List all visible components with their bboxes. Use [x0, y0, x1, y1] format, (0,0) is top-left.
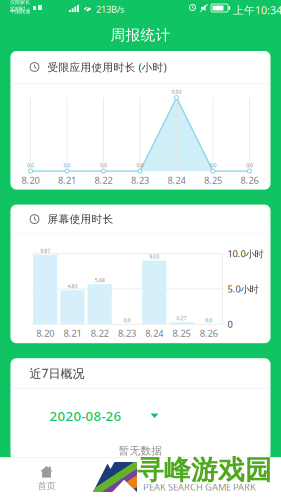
- button[interactable]: 首页: [0, 457, 93, 500]
- staticText: 首页: [37, 480, 55, 492]
- staticText: 周报统计: [110, 26, 170, 44]
- staticText: 8.21: [58, 174, 76, 186]
- staticText: 213B/s: [96, 3, 124, 15]
- staticText: 8.22: [94, 174, 112, 186]
- staticText: 0.0: [123, 317, 130, 324]
- staticText: 近7日概况: [29, 365, 84, 381]
- staticText: 8.21: [63, 327, 81, 339]
- staticText: 4.83: [67, 283, 77, 290]
- staticText: 0: [227, 318, 232, 330]
- staticText: 寻峰游戏园: [137, 454, 272, 486]
- staticText: 0.0: [63, 162, 70, 169]
- staticText: 0.0: [205, 317, 212, 324]
- staticText: 9.03: [149, 253, 159, 260]
- staticText: 受限应用使用时长 (小时): [47, 60, 166, 74]
- staticText: 5.0小时: [227, 283, 258, 295]
- staticText: 0.0: [100, 162, 107, 169]
- staticText: 仅限家长监护时: [10, 0, 30, 12]
- staticText: 8.25: [204, 174, 222, 186]
- staticText: 上午10:34: [233, 3, 281, 17]
- staticText: 9.87: [40, 247, 50, 254]
- staticText: 8.26: [200, 327, 218, 339]
- staticText: 8.23: [131, 174, 149, 186]
- staticText: 8.24: [145, 327, 163, 339]
- staticText: 8.24: [167, 174, 185, 186]
- staticText: 8.22: [91, 327, 109, 339]
- staticText: 0.0: [27, 162, 34, 169]
- staticText: 中国联通: [10, 8, 30, 15]
- staticText: PEAK SEARCH GAME PARK: [143, 481, 256, 493]
- staticText: 8.20: [36, 327, 54, 339]
- staticText: 2020-08-26: [49, 407, 121, 425]
- staticText: 屏幕使用时长: [47, 212, 113, 226]
- staticText: 0.0: [246, 162, 253, 169]
- staticText: 0.0: [136, 162, 143, 169]
- staticText: 10.0小时: [227, 247, 263, 260]
- staticText: 8.26: [240, 174, 258, 186]
- staticText: 8.20: [21, 174, 39, 186]
- staticText: 暂无数据: [118, 444, 162, 457]
- staticText: 8.23: [118, 327, 136, 339]
- button[interactable]: 2020-08-26: [10, 389, 270, 443]
- staticText: 0.93: [171, 88, 181, 95]
- staticText: 0.0: [209, 162, 216, 169]
- staticText: 0.27: [177, 315, 187, 322]
- staticText: 8.25: [173, 327, 191, 339]
- staticText: 5.68: [95, 277, 105, 284]
